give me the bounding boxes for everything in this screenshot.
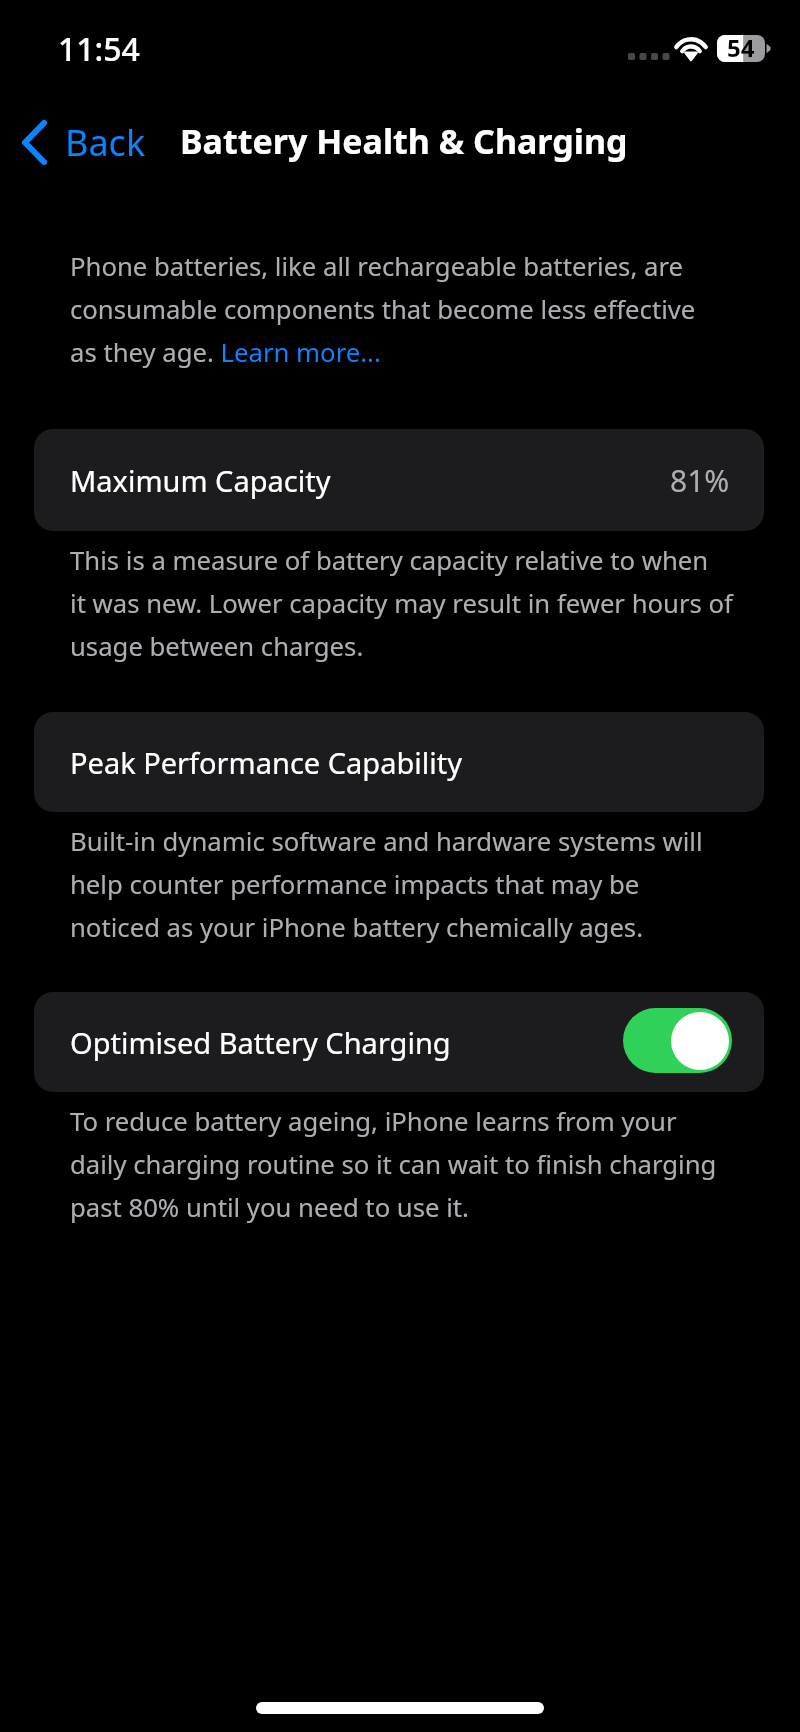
staticText: Battery Health & Charging — [180, 118, 628, 164]
button[interactable]: Back — [10, 105, 160, 179]
staticText: To reduce battery ageing, iPhone learns … — [70, 1104, 717, 1225]
staticText: Phone batteries, like all rechargeable b… — [70, 249, 696, 370]
staticText: This is a measure of battery capacity re… — [70, 543, 733, 664]
staticText: Back — [65, 118, 146, 167]
staticText: Optimised Battery Charging — [70, 1023, 451, 1062]
staticText: Peak Performance Capability — [70, 743, 462, 782]
button[interactable]: Peak Performance Capability — [34, 712, 764, 812]
staticText: 81% — [670, 460, 730, 501]
button[interactable]: Maximum Capacity — [34, 429, 764, 531]
staticText: Maximum Capacity — [70, 461, 331, 500]
button[interactable]: Optimised Battery Charging — [34, 992, 764, 1092]
staticText: 54 — [727, 31, 755, 58]
button[interactable]: Optimised Battery Charging switch, on — [623, 1008, 732, 1073]
staticText: 11:54 — [58, 27, 140, 71]
staticText: Built-in dynamic software and hardware s… — [70, 824, 703, 945]
button[interactable] — [225, 333, 385, 367]
